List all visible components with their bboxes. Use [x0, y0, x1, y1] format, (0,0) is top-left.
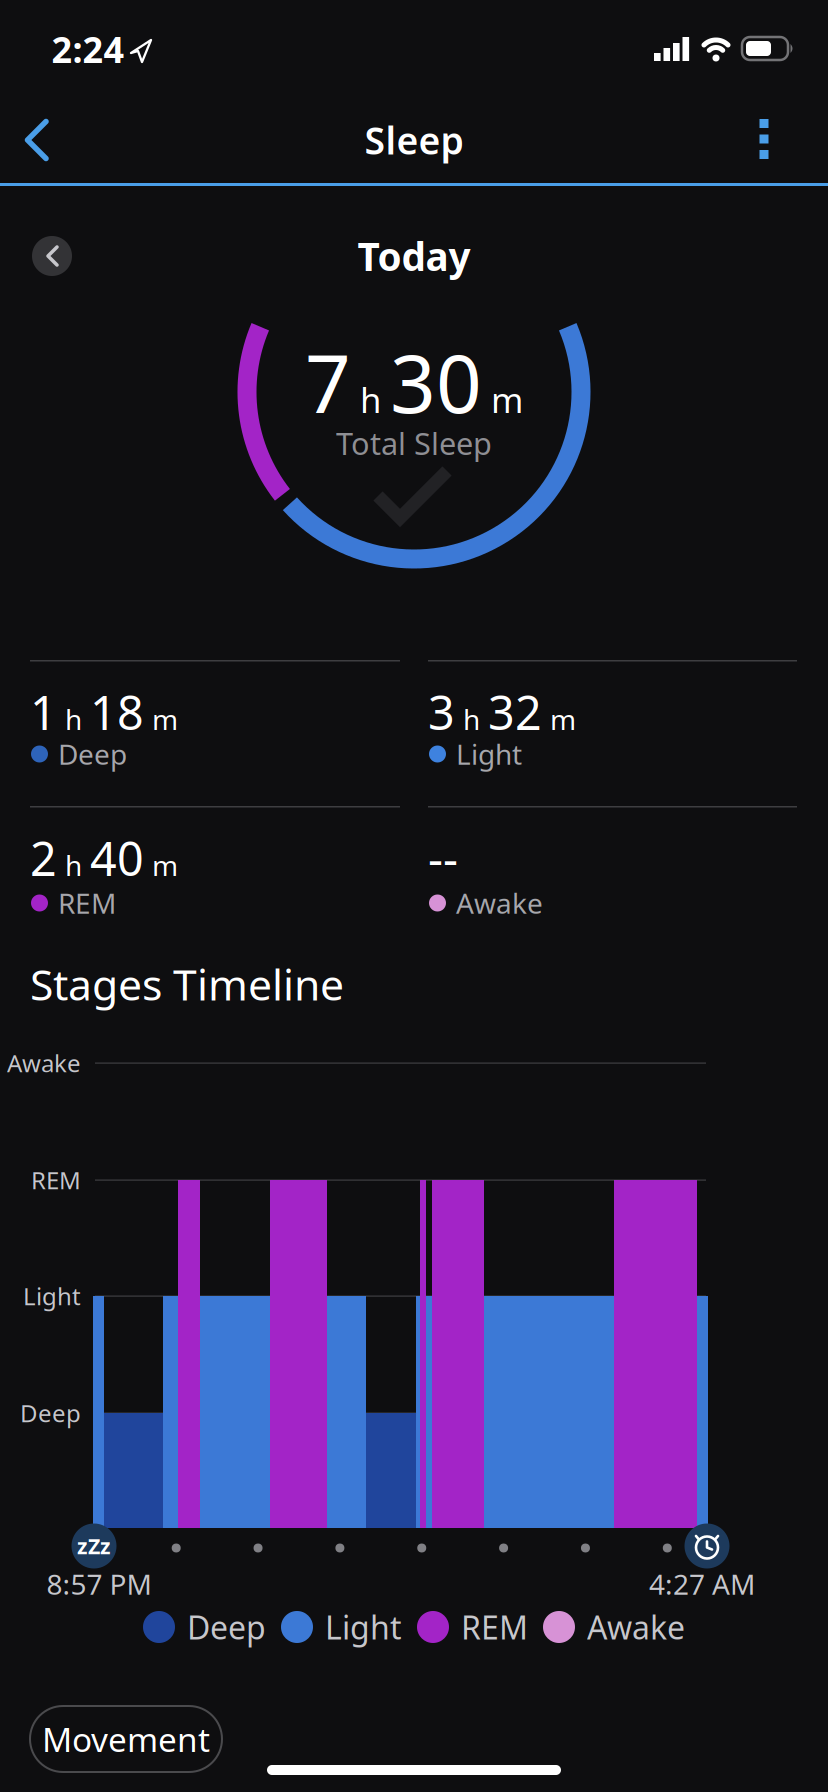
staticText: 40	[90, 827, 144, 889]
staticText: h	[65, 847, 82, 884]
staticText: Light	[456, 735, 522, 773]
staticText: Light	[23, 1280, 81, 1312]
staticText: Deep	[187, 1606, 266, 1648]
staticText: Deep	[20, 1397, 81, 1429]
staticText: 18	[90, 681, 144, 743]
staticText: 3	[428, 681, 455, 743]
staticText: zZz	[77, 1532, 111, 1560]
staticText: Awake	[587, 1606, 685, 1648]
staticText: h	[360, 377, 381, 423]
staticText: --	[428, 827, 458, 889]
staticText: 7	[305, 329, 351, 435]
staticText: m	[152, 847, 178, 884]
staticText: 8:57 PM	[46, 1565, 151, 1603]
staticText: REM	[461, 1606, 528, 1648]
staticText: 2:24	[51, 25, 124, 73]
staticText: REM	[31, 1164, 81, 1196]
staticText: h	[65, 701, 82, 738]
staticText: Awake	[7, 1047, 81, 1079]
staticText: m	[550, 701, 576, 738]
staticText: m	[491, 377, 523, 423]
staticText: h	[463, 701, 480, 738]
staticText: Awake	[456, 884, 543, 922]
staticText: Today	[357, 230, 470, 282]
staticText: Total Sleep	[336, 423, 492, 463]
staticText: Light	[325, 1606, 402, 1648]
staticText: 4:27 AM	[649, 1565, 755, 1603]
staticText: REM	[58, 884, 116, 922]
staticText: 30	[390, 329, 482, 435]
staticText: Stages Timeline	[30, 956, 344, 1012]
staticText: 2	[30, 827, 57, 889]
staticText: Movement	[42, 1717, 210, 1761]
staticText: Deep	[58, 735, 127, 773]
staticText: 1	[30, 681, 57, 743]
staticText: Sleep	[364, 115, 463, 165]
staticText: m	[152, 701, 178, 738]
staticText: 32	[488, 681, 542, 743]
